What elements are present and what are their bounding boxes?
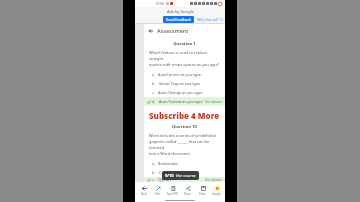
staticText: Share bbox=[184, 192, 191, 196]
staticText: Drive bbox=[199, 192, 206, 196]
button[interactable]: a. bbox=[144, 159, 225, 168]
staticText: Edit bbox=[155, 192, 160, 196]
button[interactable]: a. bbox=[144, 70, 225, 79]
staticText: Auto Change as you type bbox=[158, 90, 203, 95]
staticText: 17:56 bbox=[155, 1, 164, 6]
button[interactable]: c. bbox=[144, 88, 225, 97]
button[interactable]: b. bbox=[144, 168, 225, 177]
staticText: Back bbox=[141, 192, 147, 196]
staticText: Assessment bbox=[157, 27, 189, 34]
button[interactable]: Back bbox=[147, 27, 154, 34]
staticText: Your Answer bbox=[205, 178, 223, 182]
staticText: Why this ad? bbox=[197, 17, 219, 22]
staticText: Captions bbox=[159, 170, 175, 175]
staticText: Google bbox=[212, 192, 221, 196]
button[interactable]: Send feedback bbox=[163, 16, 194, 23]
staticText: Save PDF bbox=[167, 192, 179, 196]
button[interactable]: Edit bbox=[151, 182, 164, 198]
staticText: Bookmarks bbox=[158, 161, 179, 166]
staticText: d. bbox=[152, 99, 156, 104]
staticText: a. bbox=[152, 72, 155, 77]
button[interactable]: Share bbox=[181, 182, 194, 198]
staticText: c. bbox=[152, 177, 155, 182]
staticText: Question 10 bbox=[144, 124, 225, 130]
staticText: c. bbox=[152, 90, 155, 95]
button[interactable]: Save PDF bbox=[166, 182, 179, 198]
staticText: Clip art bbox=[158, 177, 171, 182]
staticText: Word includes a series of predefined gra… bbox=[149, 133, 220, 156]
staticText: Which feature is used to replace straigh… bbox=[149, 50, 220, 67]
button[interactable]: Back bbox=[137, 182, 150, 198]
staticText: the course bbox=[176, 173, 196, 178]
button[interactable]: Drive bbox=[196, 182, 209, 198]
button[interactable]: Why this ad? bbox=[196, 16, 224, 23]
button[interactable]: 9/10 bbox=[162, 171, 199, 180]
staticText: Send feedback bbox=[166, 17, 191, 22]
staticText: AutoCorrect as you type bbox=[158, 72, 201, 77]
button[interactable]: c. bbox=[144, 177, 225, 182]
staticText: b. bbox=[152, 81, 156, 86]
staticText: Auto Format as you type bbox=[159, 99, 203, 104]
staticText: Smart Tags as you type bbox=[159, 81, 201, 86]
staticText: Question 1 bbox=[144, 41, 225, 47]
staticText: Subscribe 4 More bbox=[149, 110, 225, 121]
staticText: b. bbox=[152, 170, 156, 175]
staticText: a. bbox=[152, 161, 155, 166]
button[interactable]: b. bbox=[144, 79, 225, 88]
button[interactable]: d. bbox=[144, 97, 225, 106]
staticText: Your Answer bbox=[205, 100, 223, 104]
staticText: 9/10 bbox=[165, 173, 174, 178]
staticText: Ads by Google bbox=[167, 9, 194, 14]
button[interactable]: Google bbox=[210, 182, 223, 198]
